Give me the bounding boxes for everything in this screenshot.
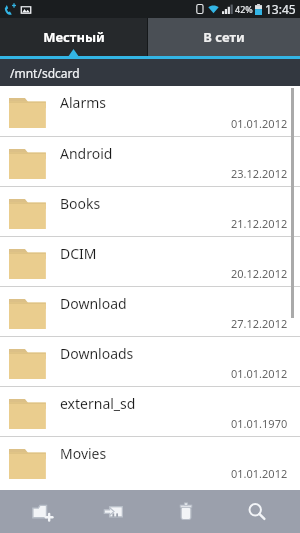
button[interactable]: Delete: [158, 490, 214, 533]
staticText: 01.01.2012: [231, 116, 288, 131]
staticText: 01.01.1970: [231, 416, 288, 431]
button[interactable]: Movies: [0, 437, 300, 486]
staticText: /mnt/sdcard: [10, 65, 80, 81]
staticText: 01.01.2012: [231, 466, 288, 481]
staticText: 13:45: [265, 1, 296, 17]
staticText: Download: [60, 294, 127, 313]
button[interactable]: DCIM: [0, 237, 300, 286]
staticText: 42%: [235, 3, 253, 15]
button[interactable]: Books: [0, 187, 300, 236]
staticText: 23.12.2012: [231, 166, 288, 181]
button[interactable]: Android: [0, 137, 300, 186]
button[interactable]: Alarms: [0, 86, 300, 136]
staticText: Alarms: [60, 93, 106, 112]
staticText: В сети: [203, 28, 245, 46]
button[interactable]: Move: [86, 490, 142, 533]
staticText: 27.12.2012: [231, 316, 288, 331]
staticText: 01.01.2012: [231, 366, 288, 381]
button[interactable]: external_sd: [0, 387, 300, 436]
button[interactable]: Search: [229, 490, 285, 533]
staticText: 20.12.2012: [231, 266, 288, 281]
staticText: external_sd: [60, 394, 136, 413]
button[interactable]: /mnt/sdcard: [0, 59, 300, 86]
button[interactable]: New folder: [15, 490, 71, 533]
staticText: Местный: [43, 28, 105, 46]
button[interactable]: Местный: [0, 18, 147, 56]
staticText: DCIM: [60, 244, 97, 263]
staticText: Android: [60, 144, 113, 163]
staticText: Movies: [60, 444, 107, 463]
staticText: 21.12.2012: [231, 216, 288, 231]
button[interactable]: Downloads: [0, 337, 300, 386]
staticText: Downloads: [60, 344, 134, 363]
staticText: Books: [60, 194, 101, 213]
button[interactable]: Download: [0, 287, 300, 336]
button[interactable]: В сети: [148, 18, 300, 56]
